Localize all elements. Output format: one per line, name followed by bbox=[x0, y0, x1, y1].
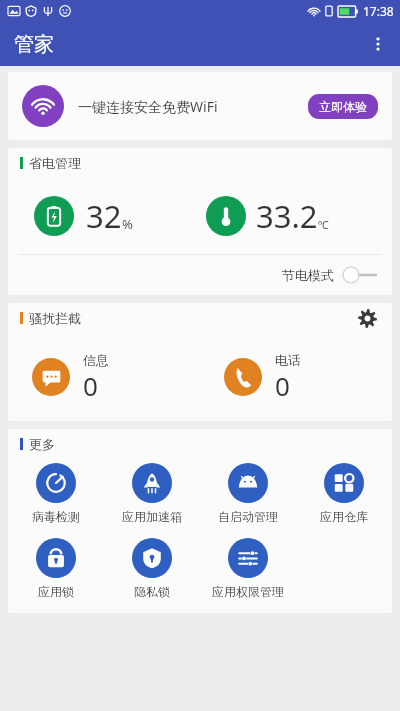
button[interactable]: 应用锁 bbox=[8, 534, 104, 603]
button[interactable]: 32 bbox=[8, 178, 200, 254]
staticText: 病毒检测 bbox=[32, 509, 80, 524]
staticText: ℃ bbox=[318, 217, 329, 232]
button[interactable]: 应用仓库 bbox=[296, 459, 392, 528]
button[interactable]: 病毒检测 bbox=[8, 459, 104, 528]
staticText: % bbox=[122, 215, 133, 233]
staticText: 应用仓库 bbox=[320, 509, 368, 524]
button[interactable]: 一键连接安全免费WiFi bbox=[8, 72, 392, 140]
staticText: 17:38 bbox=[363, 3, 394, 19]
staticText: 应用加速箱 bbox=[122, 509, 182, 524]
button[interactable]: 隐私锁 bbox=[104, 534, 200, 603]
staticText: 骚扰拦截 bbox=[29, 310, 81, 326]
staticText: 32 bbox=[86, 195, 122, 237]
button[interactable]: More options bbox=[356, 22, 400, 66]
button[interactable]: 立即体验 bbox=[308, 94, 378, 119]
staticText: 省电管理 bbox=[29, 155, 81, 171]
button[interactable]: 应用权限管理 bbox=[200, 534, 296, 603]
button[interactable]: 自启动管理 bbox=[200, 459, 296, 528]
button[interactable]: Settings bbox=[352, 303, 382, 333]
staticText: 一键连接安全免费WiFi bbox=[78, 97, 218, 116]
staticText: 自启动管理 bbox=[218, 509, 278, 524]
staticText: 管家 bbox=[14, 32, 54, 57]
staticText: 应用锁 bbox=[38, 584, 74, 599]
staticText: 隐私锁 bbox=[134, 584, 170, 599]
staticText: 0 bbox=[83, 368, 98, 403]
staticText: 33.2 bbox=[256, 195, 318, 237]
button[interactable]: 节电模式 bbox=[8, 255, 392, 295]
button[interactable]: 电话 bbox=[200, 333, 392, 421]
button[interactable]: 信息 bbox=[8, 333, 200, 421]
staticText: 0 bbox=[275, 368, 290, 403]
button[interactable]: 33.2 bbox=[200, 178, 392, 254]
staticText: 节电模式 bbox=[282, 267, 334, 283]
button[interactable]: 应用加速箱 bbox=[104, 459, 200, 528]
staticText: 应用权限管理 bbox=[212, 584, 284, 599]
staticText: 立即体验 bbox=[319, 99, 367, 114]
staticText: 电话 bbox=[275, 352, 301, 368]
staticText: 更多 bbox=[29, 436, 55, 452]
staticText: 信息 bbox=[83, 352, 109, 368]
